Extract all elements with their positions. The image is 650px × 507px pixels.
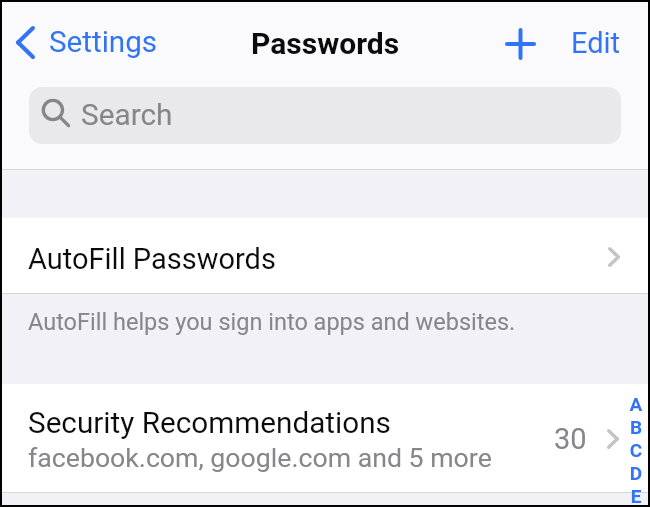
button[interactable]: Search (29, 87, 621, 144)
button[interactable]: Edit (565, 22, 627, 64)
staticText: C (626, 439, 646, 462)
staticText: A (626, 393, 646, 416)
staticText: AutoFill Passwords (28, 242, 276, 276)
staticText: E (626, 485, 646, 507)
staticText: AutoFill helps you sign into apps and we… (28, 308, 516, 336)
staticText: Settings (49, 25, 158, 60)
staticText: Security Recommendations (28, 405, 391, 440)
button[interactable]: Add password (503, 26, 538, 62)
button[interactable]: Section index (626, 393, 646, 507)
button[interactable]: AutoFill Passwords (2, 218, 648, 293)
staticText: B (626, 416, 646, 439)
button[interactable]: Security Recommendations (2, 384, 648, 492)
staticText: D (626, 462, 646, 485)
button[interactable]: Settings (10, 22, 166, 63)
staticText: facebook.com, google.com and 5 more (28, 442, 492, 473)
staticText: Edit (571, 26, 621, 60)
staticText: Passwords (251, 26, 400, 61)
staticText: 30 (554, 422, 587, 456)
staticText: Search (81, 97, 173, 132)
